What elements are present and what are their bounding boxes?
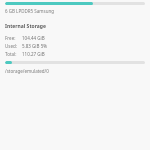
staticText: 5.83 GiB 5% xyxy=(22,43,47,49)
button[interactable]: /storage/emulated/0 xyxy=(5,68,49,74)
staticText: Free: xyxy=(5,35,22,41)
staticText: 110.27 GiB xyxy=(22,51,45,57)
staticText: Total: xyxy=(5,51,22,57)
button[interactable]: Internal Storage xyxy=(5,23,46,30)
button[interactable]: 6 GB LPDDR5 Samsung xyxy=(5,8,54,14)
staticText: 104.44 GiB xyxy=(22,35,45,41)
staticText: Used: xyxy=(5,43,22,49)
button[interactable]: Free: xyxy=(5,35,145,41)
button[interactable]: Total: xyxy=(5,51,145,57)
button[interactable]: Used: xyxy=(5,43,145,49)
